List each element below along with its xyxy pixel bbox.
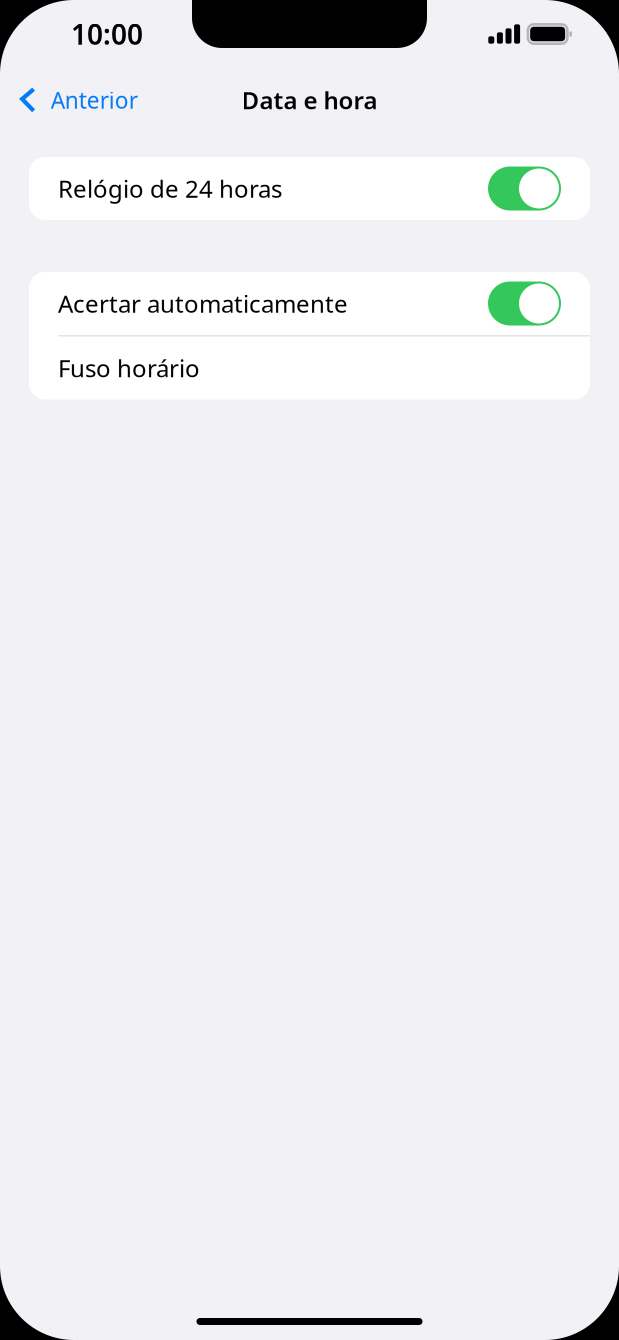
staticText: Data e hora [241, 84, 377, 116]
button[interactable]: Anterior [0, 72, 150, 118]
staticText: Relógio de 24 horas [58, 173, 282, 204]
button[interactable]: Relógio de 24 horas [29, 157, 590, 220]
staticText: Acertar automaticamente [58, 288, 348, 319]
staticText: 10:00 [71, 15, 143, 53]
button[interactable]: Acertar automaticamente [29, 272, 590, 335]
button[interactable]: Fuso horário [29, 336, 590, 399]
staticText: Anterior [51, 85, 138, 115]
staticText: Fuso horário [58, 352, 200, 384]
